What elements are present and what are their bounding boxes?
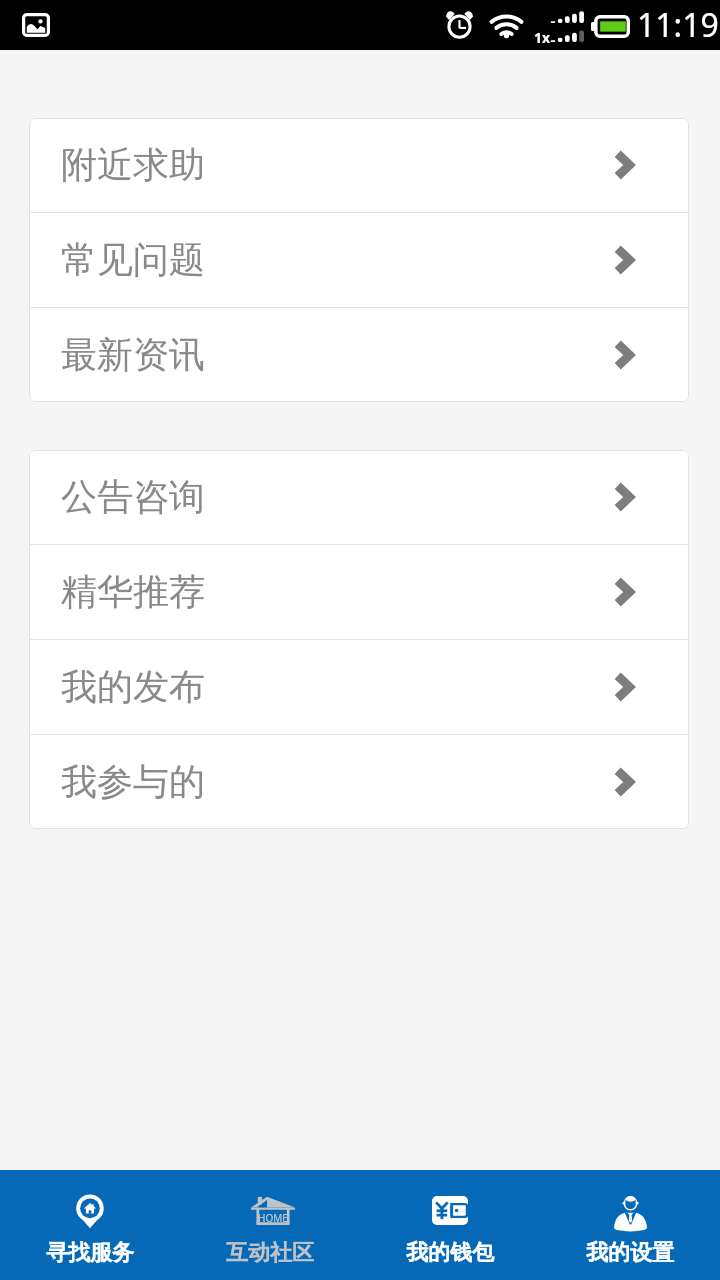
button[interactable]: 常见问题: [29, 213, 689, 307]
staticText: 公告咨询: [61, 474, 205, 519]
staticText: 我的设置: [586, 1239, 674, 1267]
staticText: 1x: [534, 28, 551, 47]
other: 我的钱包: [427, 1193, 473, 1228]
staticText: 寻找服务: [46, 1239, 134, 1267]
button[interactable]: 互动社区: [180, 1170, 360, 1280]
staticText: 互动社区: [226, 1239, 314, 1267]
staticText: 最新资讯: [61, 332, 205, 377]
staticText: 我参与的: [61, 759, 205, 804]
other: 互动社区: [247, 1193, 293, 1228]
staticText: 我的发布: [61, 664, 205, 709]
other: 我的设置: [607, 1193, 653, 1228]
staticText: 常见问题: [61, 237, 205, 282]
staticText: 精华推荐: [61, 569, 205, 614]
button[interactable]: 精华推荐: [29, 545, 689, 639]
button[interactable]: 最新资讯: [29, 308, 689, 402]
staticText: 附近求助: [61, 142, 205, 187]
staticText: HOME: [258, 1211, 288, 1225]
button[interactable]: 我的设置: [540, 1170, 720, 1280]
staticText: 11:19: [637, 3, 719, 47]
button[interactable]: 我的发布: [29, 640, 689, 734]
button[interactable]: 我的钱包: [360, 1170, 540, 1280]
staticText: 我的钱包: [406, 1239, 494, 1267]
button[interactable]: 寻找服务: [0, 1170, 180, 1280]
button[interactable]: 公告咨询: [29, 450, 689, 544]
button[interactable]: 我参与的: [29, 735, 689, 829]
other: 寻找服务: [67, 1193, 113, 1228]
button[interactable]: 附近求助: [29, 118, 689, 212]
